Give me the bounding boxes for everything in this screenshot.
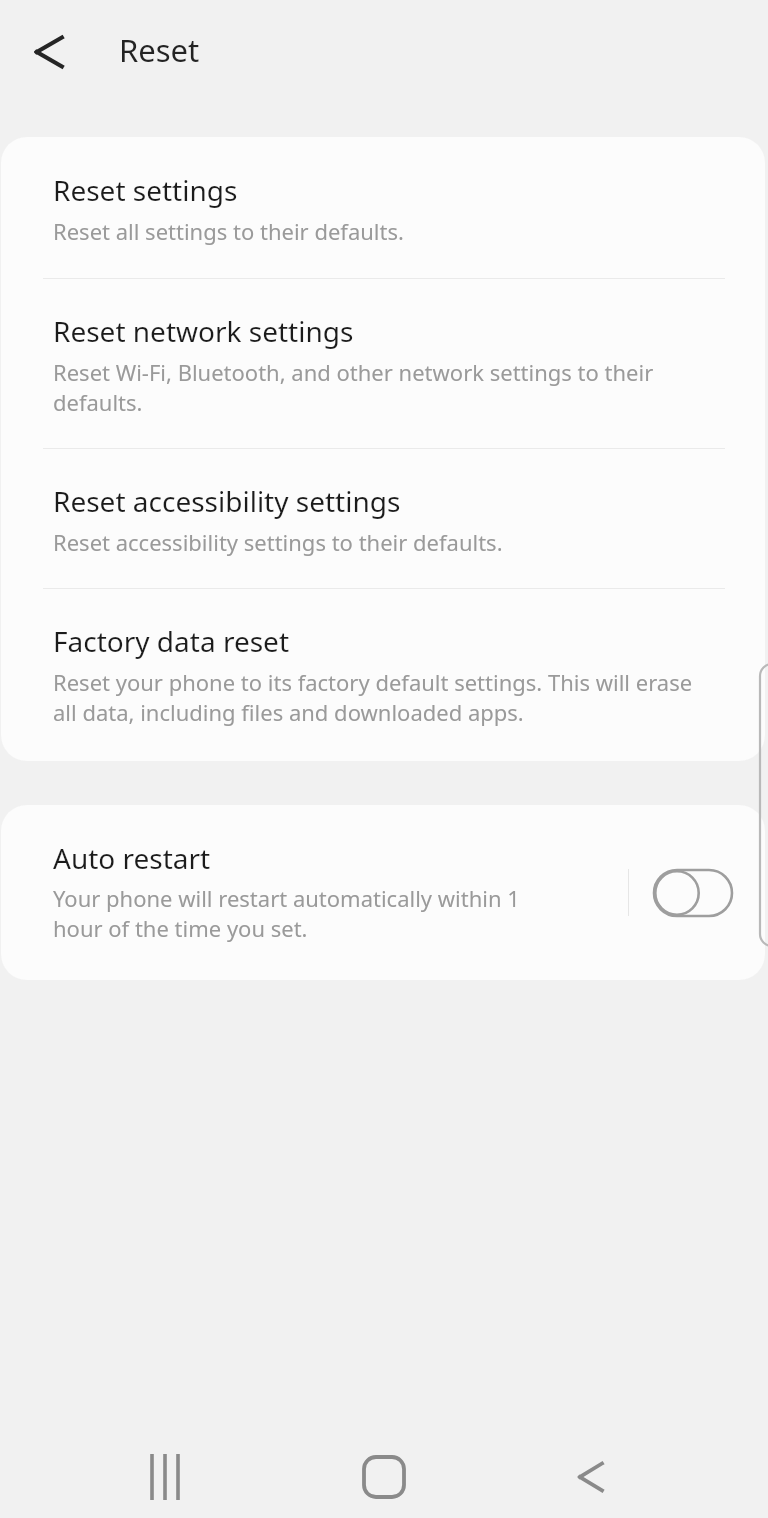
staticText: Reset xyxy=(119,29,200,71)
staticText: Reset all settings to their defaults. xyxy=(53,216,713,246)
staticText: Reset network settings xyxy=(53,312,354,350)
staticText: Factory data reset xyxy=(53,622,289,660)
button[interactable]: Reset network settings xyxy=(1,279,765,448)
staticText: Auto restart xyxy=(53,839,211,877)
staticText: Reset accessibility settings xyxy=(53,482,401,520)
button[interactable]: Reset accessibility settings xyxy=(1,449,765,588)
button[interactable]: Back xyxy=(548,1429,644,1518)
button[interactable]: Home xyxy=(336,1429,432,1518)
staticText: Reset accessibility settings to their de… xyxy=(53,527,713,557)
staticText: Reset settings xyxy=(53,171,238,209)
button[interactable]: Reset settings xyxy=(1,137,765,278)
button[interactable]: Recent apps xyxy=(117,1429,213,1518)
button[interactable]: Auto restart xyxy=(1,805,765,980)
button[interactable]: Back xyxy=(34,28,82,76)
staticText: Your phone will restart automatically wi… xyxy=(53,883,533,944)
staticText: Reset Wi-Fi, Bluetooth, and other networ… xyxy=(53,357,708,418)
staticText: Reset your phone to its factory default … xyxy=(53,667,708,728)
button[interactable]: Factory data reset xyxy=(1,589,765,761)
button[interactable]: Auto restart toggle, off xyxy=(653,869,733,917)
